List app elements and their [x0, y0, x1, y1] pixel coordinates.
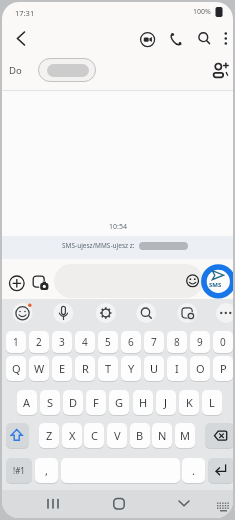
staticText: SMS-ujesz/MMS-ujesz z: [62, 241, 135, 250]
staticText: 5 [105, 335, 111, 349]
staticText: 8 [174, 335, 180, 349]
staticText: B [136, 428, 144, 443]
staticText: 10:54 [109, 222, 127, 232]
staticText: 6 [128, 335, 134, 349]
staticText: I [175, 361, 179, 376]
staticText: S [47, 395, 54, 410]
staticText: G [115, 395, 124, 410]
staticText: C [91, 428, 98, 443]
staticText: A [23, 395, 31, 410]
staticText: Do [9, 64, 22, 77]
staticText: 1 [13, 335, 19, 349]
staticText: M [180, 428, 190, 443]
staticText: 0 [220, 335, 226, 349]
staticText: SMS [209, 281, 222, 289]
staticText: 9 [197, 335, 203, 349]
staticText: N [158, 428, 167, 443]
staticText: H [139, 395, 148, 410]
staticText: T [105, 361, 112, 376]
staticText: O [196, 361, 205, 376]
staticText: R [82, 361, 89, 376]
staticText: L [209, 395, 215, 410]
staticText: 7 [151, 335, 157, 349]
staticText: V [114, 428, 121, 443]
staticText: 100% [193, 7, 211, 17]
staticText: . [192, 463, 195, 478]
staticText: J [164, 395, 168, 410]
staticText: , [45, 463, 48, 478]
staticText: X [69, 428, 76, 443]
staticText: !#1 [13, 465, 25, 476]
staticText: 3 [59, 335, 65, 349]
staticText: Q [12, 361, 21, 376]
staticText: E [59, 361, 66, 376]
staticText: U [150, 361, 159, 376]
staticText: P [220, 361, 227, 376]
staticText: F [93, 395, 99, 410]
staticText: K [186, 395, 193, 410]
staticText: Y [128, 361, 135, 376]
staticText: Z [46, 428, 53, 443]
staticText: 2 [36, 335, 42, 349]
staticText: D [69, 395, 78, 410]
staticText: 4 [82, 335, 88, 349]
staticText: 17:31 [15, 8, 35, 18]
staticText: W [34, 361, 45, 376]
